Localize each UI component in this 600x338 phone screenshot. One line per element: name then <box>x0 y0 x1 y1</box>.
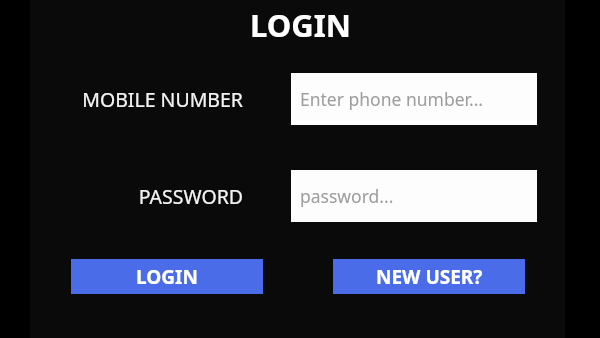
staticText: Enter phone number... <box>300 87 484 111</box>
button[interactable]: LOGIN <box>71 259 263 294</box>
staticText: password... <box>300 184 394 208</box>
staticText: PASSWORD <box>138 183 243 210</box>
button[interactable]: password... <box>291 170 537 222</box>
button[interactable]: Enter phone number... <box>291 73 537 125</box>
staticText: NEW USER? <box>376 264 483 290</box>
staticText: LOGIN <box>250 4 351 44</box>
staticText: LOGIN <box>136 264 198 290</box>
staticText: MOBILE NUMBER <box>82 86 243 113</box>
button[interactable]: NEW USER? <box>333 259 525 294</box>
